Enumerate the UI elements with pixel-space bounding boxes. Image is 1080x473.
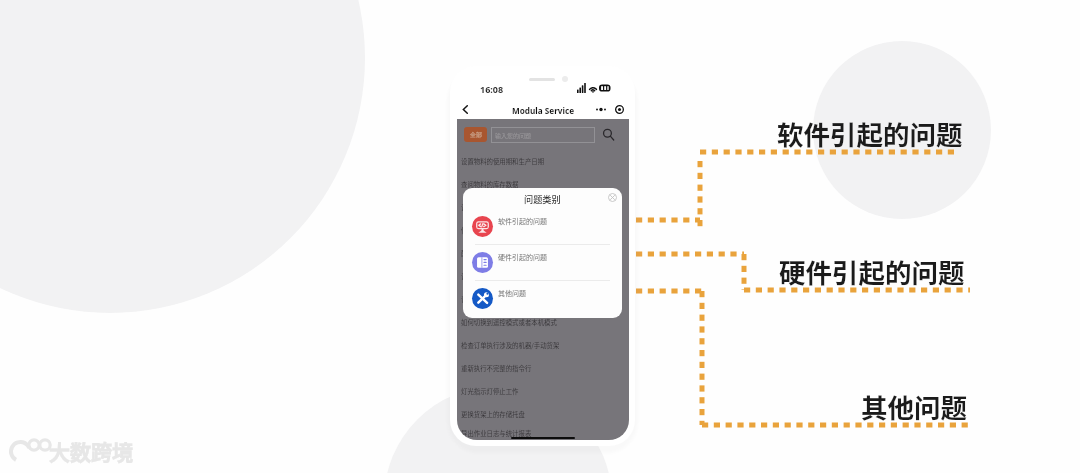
button[interactable]: 查阅物料的库存数据 — [457, 173, 629, 196]
button[interactable]: 检查订单执行涉及的机器/手动货架 — [457, 334, 629, 357]
button[interactable]: 硬件引起的问题 — [463, 245, 622, 280]
staticText: 配置入库作业的校验规则 — [461, 249, 532, 258]
button[interactable]: 导出作业日志与统计报表 — [457, 426, 629, 440]
button[interactable]: 配置入库作业的校验规则 — [457, 242, 629, 265]
staticText: 导出作业日志与统计报表 — [461, 429, 532, 438]
staticText: 设置物料存放区域的限制 — [461, 203, 532, 212]
button[interactable]: Close — [605, 190, 619, 204]
staticText: 其他问题 — [861, 387, 967, 425]
button[interactable]: 设置物料存放区域的限制 — [457, 196, 629, 219]
staticText: 硬件引起的问题 — [498, 252, 547, 262]
button[interactable]: 如何切换到遥控模式或者本机模式 — [457, 311, 629, 334]
button[interactable]: Record — [609, 100, 629, 118]
button[interactable]: 修改物料清单中的数量 — [457, 219, 629, 242]
button[interactable]: 设置物料的使用期和生产日期 — [457, 150, 629, 173]
staticText: 修改物料清单中的数量 — [461, 226, 525, 235]
staticText: 订单指令导入报错 — [461, 295, 513, 304]
staticText: 如何切换到遥控模式或者本机模式 — [461, 318, 557, 327]
staticText: 灯光指示灯停止工作 — [461, 387, 519, 396]
staticText: Modula Service — [512, 105, 575, 116]
staticText: 更换货架上的存储托盘 — [461, 410, 525, 419]
staticText: 输入您的问题 — [495, 131, 532, 140]
button[interactable]: Back — [457, 100, 475, 118]
button[interactable]: 订单指令导入报错 — [457, 288, 629, 311]
staticText: 软件引起的问题 — [498, 216, 547, 226]
staticText: 全部 — [470, 131, 482, 139]
button[interactable]: 更换货架上的存储托盘 — [457, 403, 629, 426]
button[interactable]: 设置跨区域物料的筛选优先级 — [457, 265, 629, 288]
staticText: 其他问题 — [498, 288, 526, 298]
staticText: 设置跨区域物料的筛选优先级 — [461, 272, 545, 281]
staticText: 大数跨境 — [49, 436, 133, 466]
staticText: 问题类别 — [524, 192, 561, 205]
button[interactable]: 软件引起的问题 — [463, 209, 622, 244]
button[interactable]: 灯光指示灯停止工作 — [457, 380, 629, 403]
button[interactable]: 重新执行不完整的指令行 — [457, 357, 629, 380]
staticText: 查阅物料的库存数据 — [461, 180, 519, 189]
staticText: 硬件引起的问题 — [779, 252, 965, 290]
staticText: 软件引起的问题 — [777, 114, 963, 152]
staticText: 16:08 — [480, 83, 504, 95]
staticText: 重新执行不完整的指令行 — [461, 364, 532, 373]
button[interactable]: More options — [591, 100, 611, 118]
button[interactable]: 其他问题 — [463, 281, 622, 316]
staticText: 检查订单执行涉及的机器/手动货架 — [461, 341, 560, 350]
button[interactable]: Search — [602, 128, 615, 141]
staticText: 设置物料的使用期和生产日期 — [461, 157, 545, 166]
button[interactable]: 全部 — [464, 127, 487, 142]
